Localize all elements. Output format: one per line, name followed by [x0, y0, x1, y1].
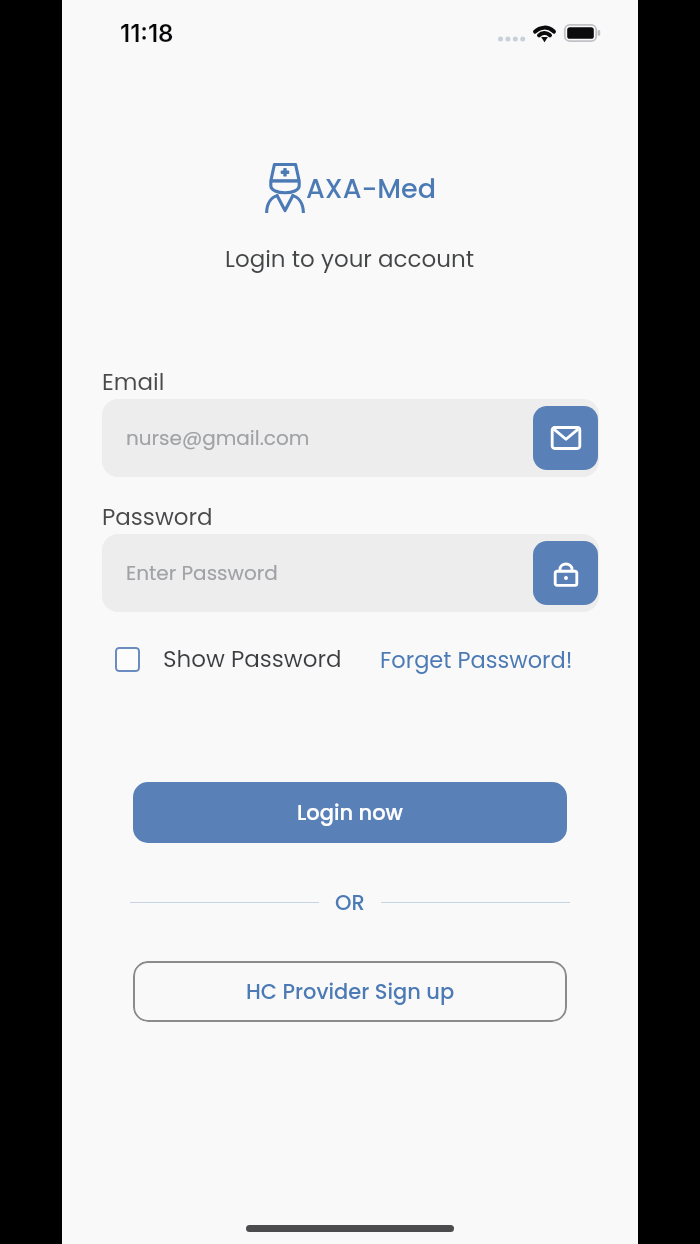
- staticText: Login now: [297, 798, 403, 827]
- staticText: OR: [335, 888, 365, 917]
- other: AXA-Med logo: [265, 163, 305, 213]
- staticText: Forget Password!: [380, 644, 573, 675]
- button[interactable]: HC Provider Sign up: [133, 961, 567, 1022]
- button[interactable]: nurse@gmail.com: [102, 399, 599, 477]
- staticText: HC Provider Sign up: [246, 977, 455, 1006]
- button[interactable]: Login now: [133, 782, 567, 843]
- staticText: Login to your account: [225, 243, 475, 275]
- button[interactable]: Email input: [533, 406, 598, 470]
- button[interactable]: Enter Password: [102, 534, 599, 612]
- staticText: nurse@gmail.com: [126, 424, 310, 452]
- button[interactable]: Forget Password!: [380, 644, 573, 675]
- staticText: Password: [102, 501, 213, 533]
- staticText: Enter Password: [126, 559, 278, 587]
- button[interactable]: Password input: [533, 541, 598, 605]
- staticText: AXA-Med: [306, 170, 437, 208]
- staticText: Email: [102, 366, 165, 398]
- staticText: 11:18: [120, 19, 174, 48]
- button[interactable]: Show Password: [115, 643, 342, 675]
- staticText: Show Password: [163, 643, 342, 675]
